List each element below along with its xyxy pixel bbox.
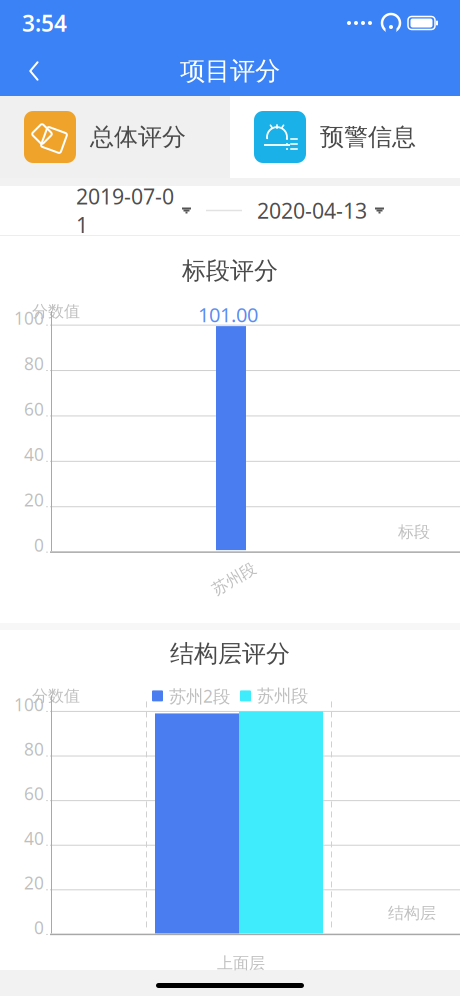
staticText: 标段评分 — [182, 256, 278, 285]
staticText: 上面层 — [217, 953, 265, 973]
staticText: 总体评分 — [90, 122, 186, 152]
staticText: 101.00 — [198, 301, 258, 328]
staticText: 100 — [14, 693, 44, 716]
staticText: 20 — [24, 488, 44, 511]
staticText: 结构层 — [388, 903, 436, 923]
staticText: 100 — [14, 307, 44, 330]
staticText: 0 — [34, 916, 44, 939]
staticText: 苏州段 — [210, 569, 258, 589]
staticText: 2019-07-01 — [76, 182, 174, 239]
staticText: 分数值 — [32, 686, 80, 706]
staticText: 0 — [34, 534, 44, 557]
staticText: 预警信息 — [320, 122, 416, 152]
staticText: 分数值 — [32, 301, 80, 321]
staticText: 60 — [24, 397, 44, 420]
staticText: 40 — [24, 443, 44, 466]
staticText: 苏州2段 — [169, 684, 230, 707]
button[interactable]: Back — [12, 49, 56, 93]
button[interactable]: 2020-04-13 — [251, 186, 390, 235]
staticText: 20 — [24, 871, 44, 894]
staticText: 60 — [24, 782, 44, 805]
staticText: 3:54 — [22, 8, 67, 38]
staticText: 结构层评分 — [170, 639, 290, 668]
staticText: 2020-04-13 — [257, 196, 367, 225]
button[interactable]: 预警信息 — [230, 96, 460, 178]
staticText: 80 — [24, 737, 44, 760]
staticText: 40 — [24, 827, 44, 850]
staticText: 80 — [24, 352, 44, 375]
button[interactable]: 2019-07-01 — [70, 172, 197, 249]
button[interactable]: 总体评分 — [0, 96, 230, 178]
staticText: 标段 — [398, 522, 430, 542]
staticText: 项目评分 — [180, 55, 280, 86]
staticText: 苏州段 — [257, 685, 308, 707]
